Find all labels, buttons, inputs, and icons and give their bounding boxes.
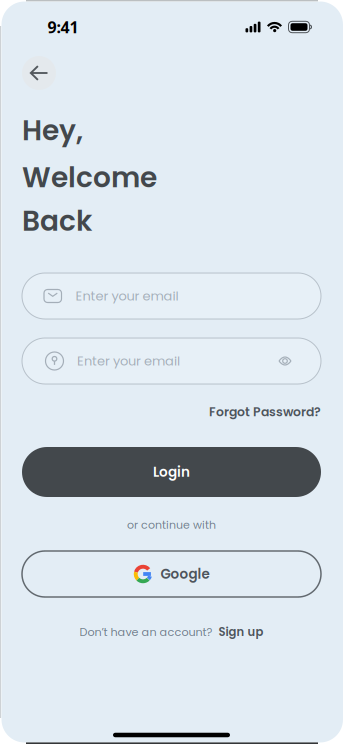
staticText: Enter your email xyxy=(75,287,178,305)
staticText: 9:41 xyxy=(47,16,78,38)
button[interactable]: Back xyxy=(22,56,56,90)
button[interactable]: Google xyxy=(22,551,321,597)
staticText: Don’t have an account? xyxy=(79,624,212,640)
button[interactable]: Show password xyxy=(279,356,291,365)
button[interactable]: Login xyxy=(22,447,321,497)
staticText: Enter your email xyxy=(77,352,180,370)
staticText: Sign up xyxy=(218,624,263,640)
staticText: Login xyxy=(153,462,190,481)
staticText: Back xyxy=(22,201,92,241)
staticText: Hey, xyxy=(22,111,83,150)
button[interactable]: Forgot Password? xyxy=(209,403,321,421)
staticText: or continue with xyxy=(127,517,216,533)
staticText: Welcome xyxy=(22,158,157,197)
staticText: Google xyxy=(160,565,209,583)
button[interactable]: Sign up xyxy=(218,624,263,640)
staticText: Forgot Password? xyxy=(209,403,321,421)
